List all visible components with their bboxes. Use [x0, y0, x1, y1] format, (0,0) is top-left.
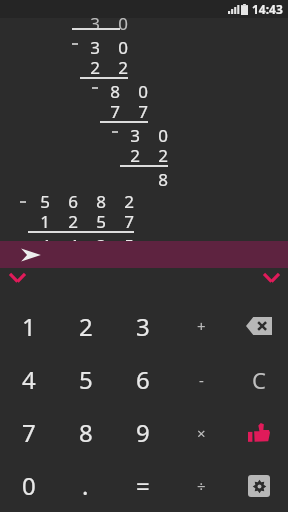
button[interactable]: = — [114, 459, 172, 512]
button[interactable]: C — [230, 353, 288, 406]
button[interactable]: . — [57, 459, 114, 512]
button[interactable]: - — [172, 353, 230, 406]
staticText: 8 — [96, 190, 106, 210]
staticText: 7 — [124, 210, 134, 230]
button[interactable]: × — [172, 406, 230, 459]
staticText: 14:43 — [252, 1, 283, 17]
staticText: = — [136, 469, 150, 502]
staticText: 0 — [138, 80, 148, 100]
staticText: 3 — [136, 310, 150, 343]
staticText: ÷ — [197, 476, 206, 496]
staticText: 2 — [118, 56, 128, 76]
staticText: . — [82, 469, 89, 502]
staticText: 2 — [130, 144, 140, 164]
button[interactable]: 6 — [114, 353, 172, 406]
staticText: 2 — [96, 234, 106, 254]
staticText: 1 — [40, 210, 50, 230]
staticText: C — [252, 365, 266, 395]
staticText: 2 — [124, 190, 134, 210]
staticText: 1 — [22, 310, 36, 343]
staticText: 6 — [68, 190, 78, 210]
button[interactable]: Confirm — [230, 406, 288, 459]
staticText: 5 — [40, 190, 50, 210]
staticText: 5 — [79, 363, 93, 396]
staticText: 0 — [22, 469, 36, 502]
button[interactable]: 4 — [0, 353, 57, 406]
staticText: 8 — [79, 416, 93, 449]
staticText: 4 — [68, 234, 78, 254]
staticText: 4 — [40, 234, 50, 254]
staticText: + — [197, 316, 206, 336]
other: Backspace — [246, 317, 272, 335]
staticText: 5 — [96, 210, 106, 230]
staticText: 9 — [136, 416, 150, 449]
button[interactable]: 8 — [57, 406, 114, 459]
staticText: × — [197, 423, 206, 443]
staticText: 3 — [90, 12, 100, 32]
staticText: 5 — [124, 234, 134, 254]
button[interactable]: Backspace — [230, 299, 288, 353]
staticText: 3 — [130, 124, 140, 144]
staticText: 2 — [90, 56, 100, 76]
button[interactable]: Settings — [230, 459, 288, 512]
button[interactable]: 0 — [0, 459, 57, 512]
button[interactable]: Expand — [5, 269, 29, 285]
button[interactable]: 3 — [114, 299, 172, 353]
button[interactable]: + — [172, 299, 230, 353]
button[interactable]: ÷ — [172, 459, 230, 512]
button[interactable]: 7 — [0, 406, 57, 459]
button[interactable]: 1 — [0, 299, 57, 353]
button[interactable]: 9 — [114, 406, 172, 459]
staticText: 6 — [136, 363, 150, 396]
staticText: 2 — [158, 144, 168, 164]
button[interactable]: Next step — [0, 241, 288, 268]
button[interactable]: Expand — [259, 269, 283, 285]
staticText: 7 — [110, 100, 120, 120]
staticText: 8 — [158, 168, 168, 188]
other: Next step — [20, 247, 42, 263]
staticText: - — [199, 370, 204, 390]
staticText: 7 — [138, 100, 148, 120]
other: Settings — [248, 475, 270, 497]
button[interactable]: 2 — [57, 299, 114, 353]
staticText: 3 — [90, 36, 100, 56]
staticText: 2 — [68, 210, 78, 230]
staticText: 0 — [118, 36, 128, 56]
staticText: 8 — [110, 80, 120, 100]
button[interactable]: 5 — [57, 353, 114, 406]
staticText: 0 — [118, 12, 128, 32]
staticText: 4 — [22, 363, 36, 396]
staticText: 2 — [79, 310, 93, 343]
staticText: 0 — [158, 124, 168, 144]
other: Confirm — [248, 422, 270, 444]
staticText: 7 — [22, 416, 36, 449]
